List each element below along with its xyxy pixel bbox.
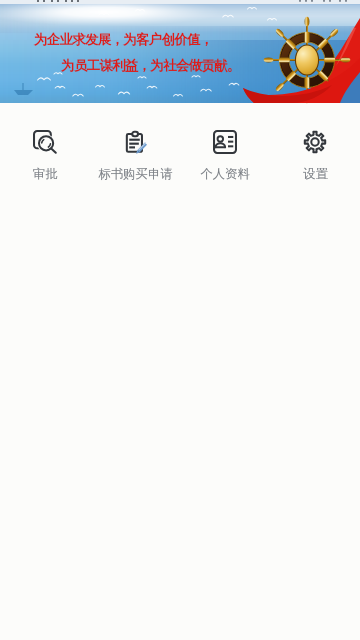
staticText: 设置 xyxy=(303,166,328,182)
staticText: 为企业求发展，为客户创价值， xyxy=(34,31,213,48)
button[interactable]: 标书购买申请 xyxy=(91,128,179,184)
staticText: 个人资料 xyxy=(200,166,250,182)
button[interactable]: 设置 xyxy=(271,128,359,184)
button[interactable]: 个人资料 xyxy=(181,128,269,184)
staticText: 为员工谋利益，为社会做贡献。 xyxy=(61,57,240,74)
button[interactable]: 审批 xyxy=(1,128,89,184)
staticText: 标书购买申请 xyxy=(98,166,173,182)
staticText: 审批 xyxy=(33,166,58,182)
